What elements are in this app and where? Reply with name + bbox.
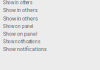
- staticText: Show on panel: [3, 31, 37, 37]
- staticText: Show notifications: [3, 39, 40, 44]
- staticText: Show in others: [3, 0, 32, 5]
- staticText: Show on panel: [3, 24, 33, 29]
- staticText: Show notifications: [3, 46, 47, 52]
- staticText: Show in others: [3, 7, 38, 13]
- staticText: Show in others: [3, 15, 38, 22]
